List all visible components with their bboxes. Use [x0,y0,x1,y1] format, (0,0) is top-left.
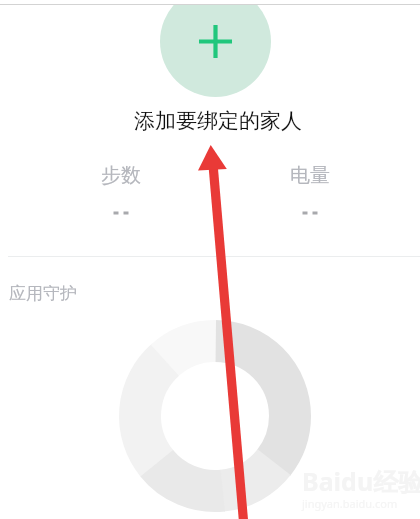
button[interactable]: 应用守护 [0,274,420,310]
staticText: jingyan.baidu.com [302,496,398,511]
button[interactable]: 添加要绑定的家人 [160,5,271,97]
button[interactable]: 电量 [260,160,360,224]
button[interactable]: 步数 [71,160,171,224]
staticText: 电量 [290,163,330,188]
staticText: 添加要绑定的家人 [8,108,420,134]
staticText: Baidu经验 [302,464,420,498]
button[interactable]: 添加要绑定的家人 [0,104,420,136]
staticText: 应用守护 [9,283,77,304]
staticText: 步数 [101,163,141,188]
